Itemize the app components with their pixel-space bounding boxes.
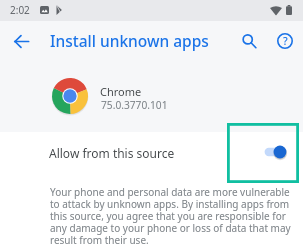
- staticText: Chrome: [100, 84, 142, 99]
- staticText: 2:02: [10, 3, 30, 17]
- button[interactable]: Allow from this source: [0, 132, 303, 182]
- staticText: ?: [283, 34, 288, 48]
- staticText: Allow from this source: [49, 145, 175, 161]
- button[interactable]: Chrome: [0, 60, 303, 132]
- staticText: 75.0.3770.101: [101, 98, 168, 112]
- button[interactable]: Back: [8, 28, 34, 54]
- button[interactable]: Search: [236, 28, 262, 54]
- button[interactable]: Allow from this source toggle, on: [262, 141, 292, 163]
- staticText: Install unknown apps: [50, 30, 209, 51]
- button[interactable]: Help: [272, 28, 298, 54]
- staticText: Your phone and personal data are more vu…: [50, 187, 291, 247]
